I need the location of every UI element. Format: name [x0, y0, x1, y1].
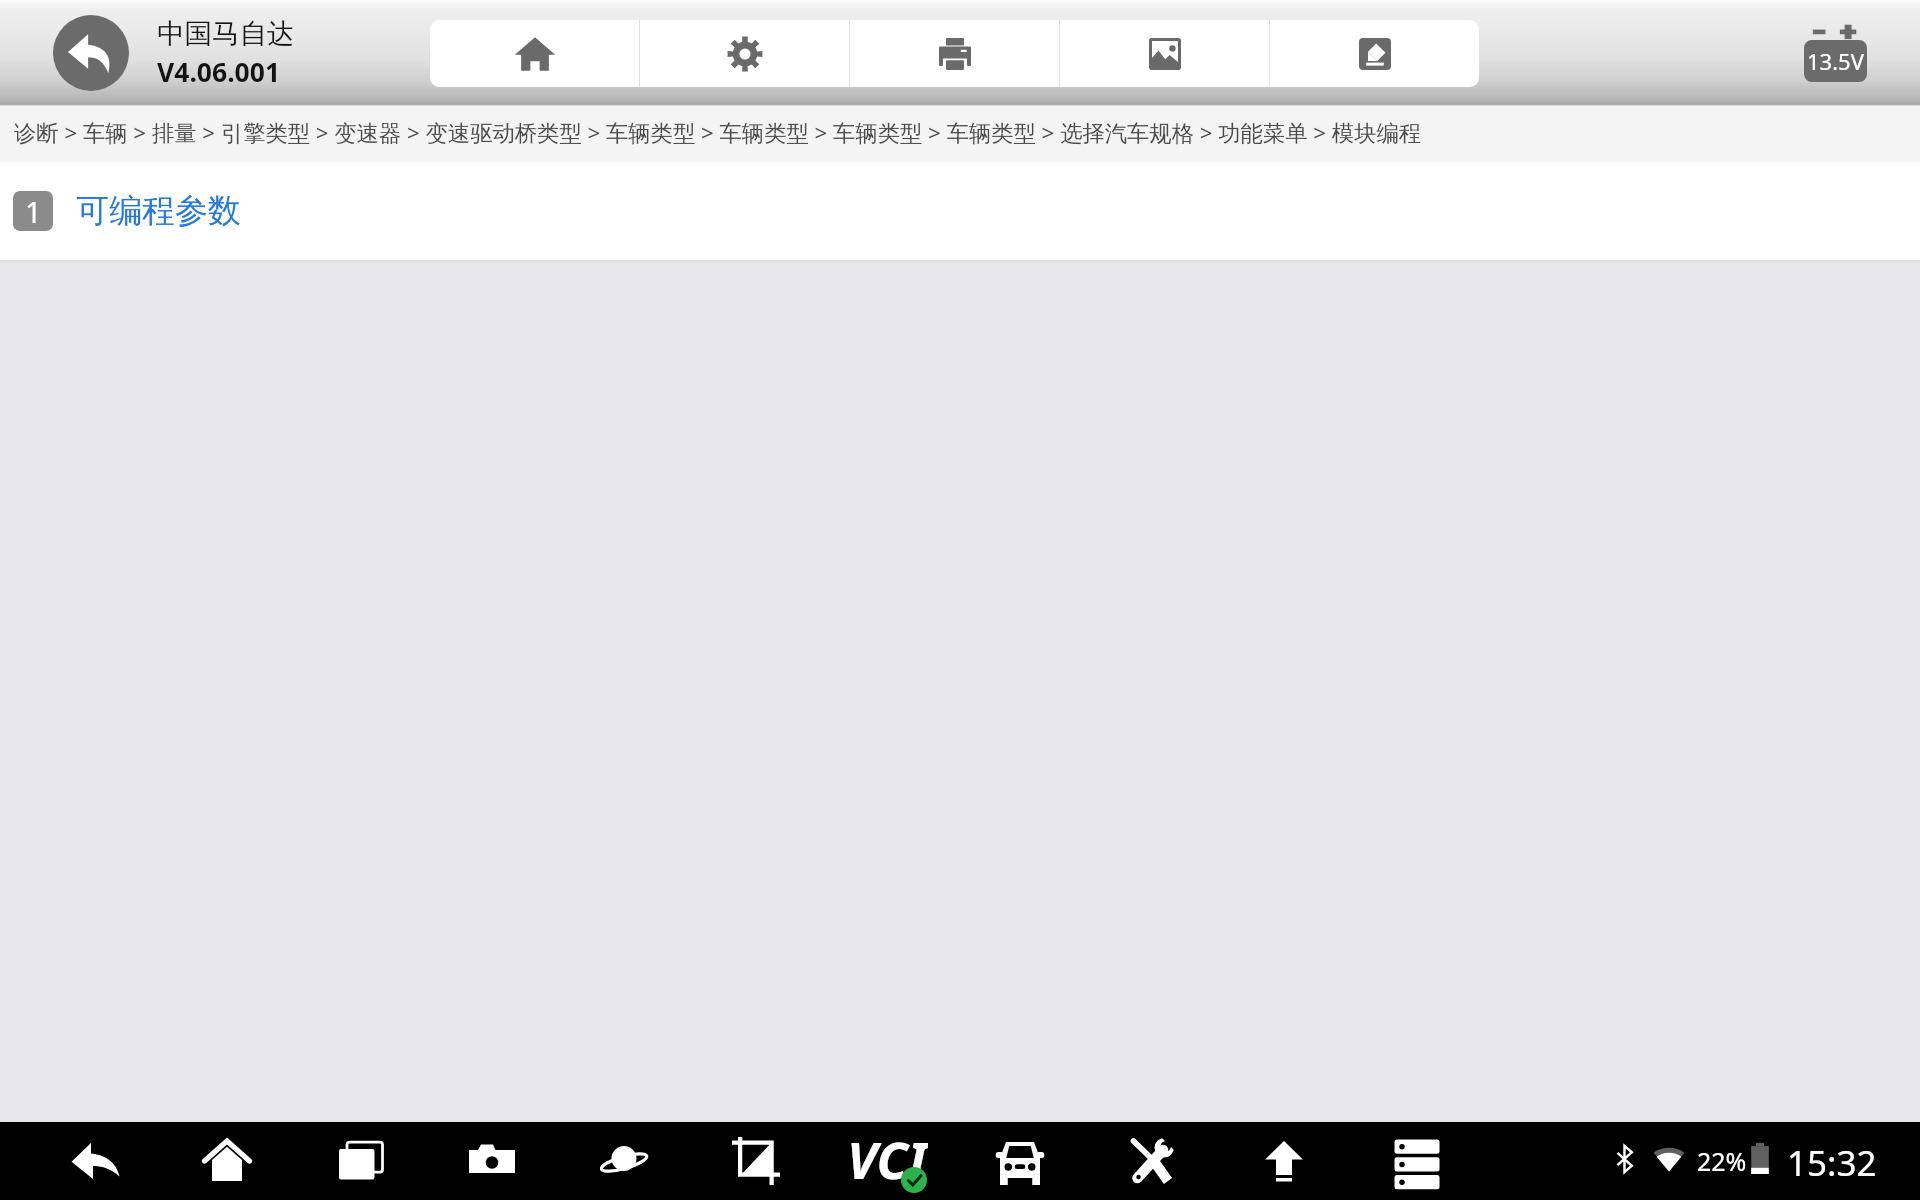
button[interactable]: Car: [991, 1132, 1049, 1190]
button[interactable]: Tools: [1123, 1132, 1181, 1190]
button[interactable]: Feedback: [1270, 20, 1479, 87]
button[interactable]: Battery voltage: [1795, 12, 1875, 92]
button[interactable]: 1: [0, 162, 1920, 260]
button[interactable]: Back: [66, 1132, 124, 1190]
staticText: 中国马自达: [157, 17, 295, 52]
button[interactable]: Gallery: [1060, 20, 1269, 87]
button[interactable]: Home: [430, 20, 639, 87]
button[interactable]: Print: [850, 20, 1059, 87]
button[interactable]: Upload: [1255, 1132, 1313, 1190]
staticText: 1: [25, 192, 42, 231]
button[interactable]: VCI: [845, 1130, 935, 1192]
staticText: 可编程参数: [76, 190, 241, 232]
staticText: 22%: [1697, 1144, 1747, 1178]
button[interactable]: Menu: [1388, 1132, 1446, 1190]
button[interactable]: Recents: [331, 1132, 389, 1190]
staticText: 诊断 > 车辆 > 排量 > 引擎类型 > 变速器 > 变速驱动桥类型 > 车辆…: [14, 117, 1422, 147]
staticText: 13.5V: [1807, 46, 1864, 76]
staticText: VCI: [847, 1124, 928, 1186]
staticText: 15:32: [1787, 1139, 1877, 1187]
button[interactable]: Crop: [727, 1132, 785, 1190]
button[interactable]: Back: [53, 15, 129, 91]
staticText: V4.06.001: [157, 54, 281, 90]
button[interactable]: Home: [198, 1132, 256, 1190]
button[interactable]: Browser: [595, 1132, 653, 1190]
button[interactable]: Screenshot: [463, 1132, 521, 1190]
button[interactable]: Settings: [640, 20, 849, 87]
